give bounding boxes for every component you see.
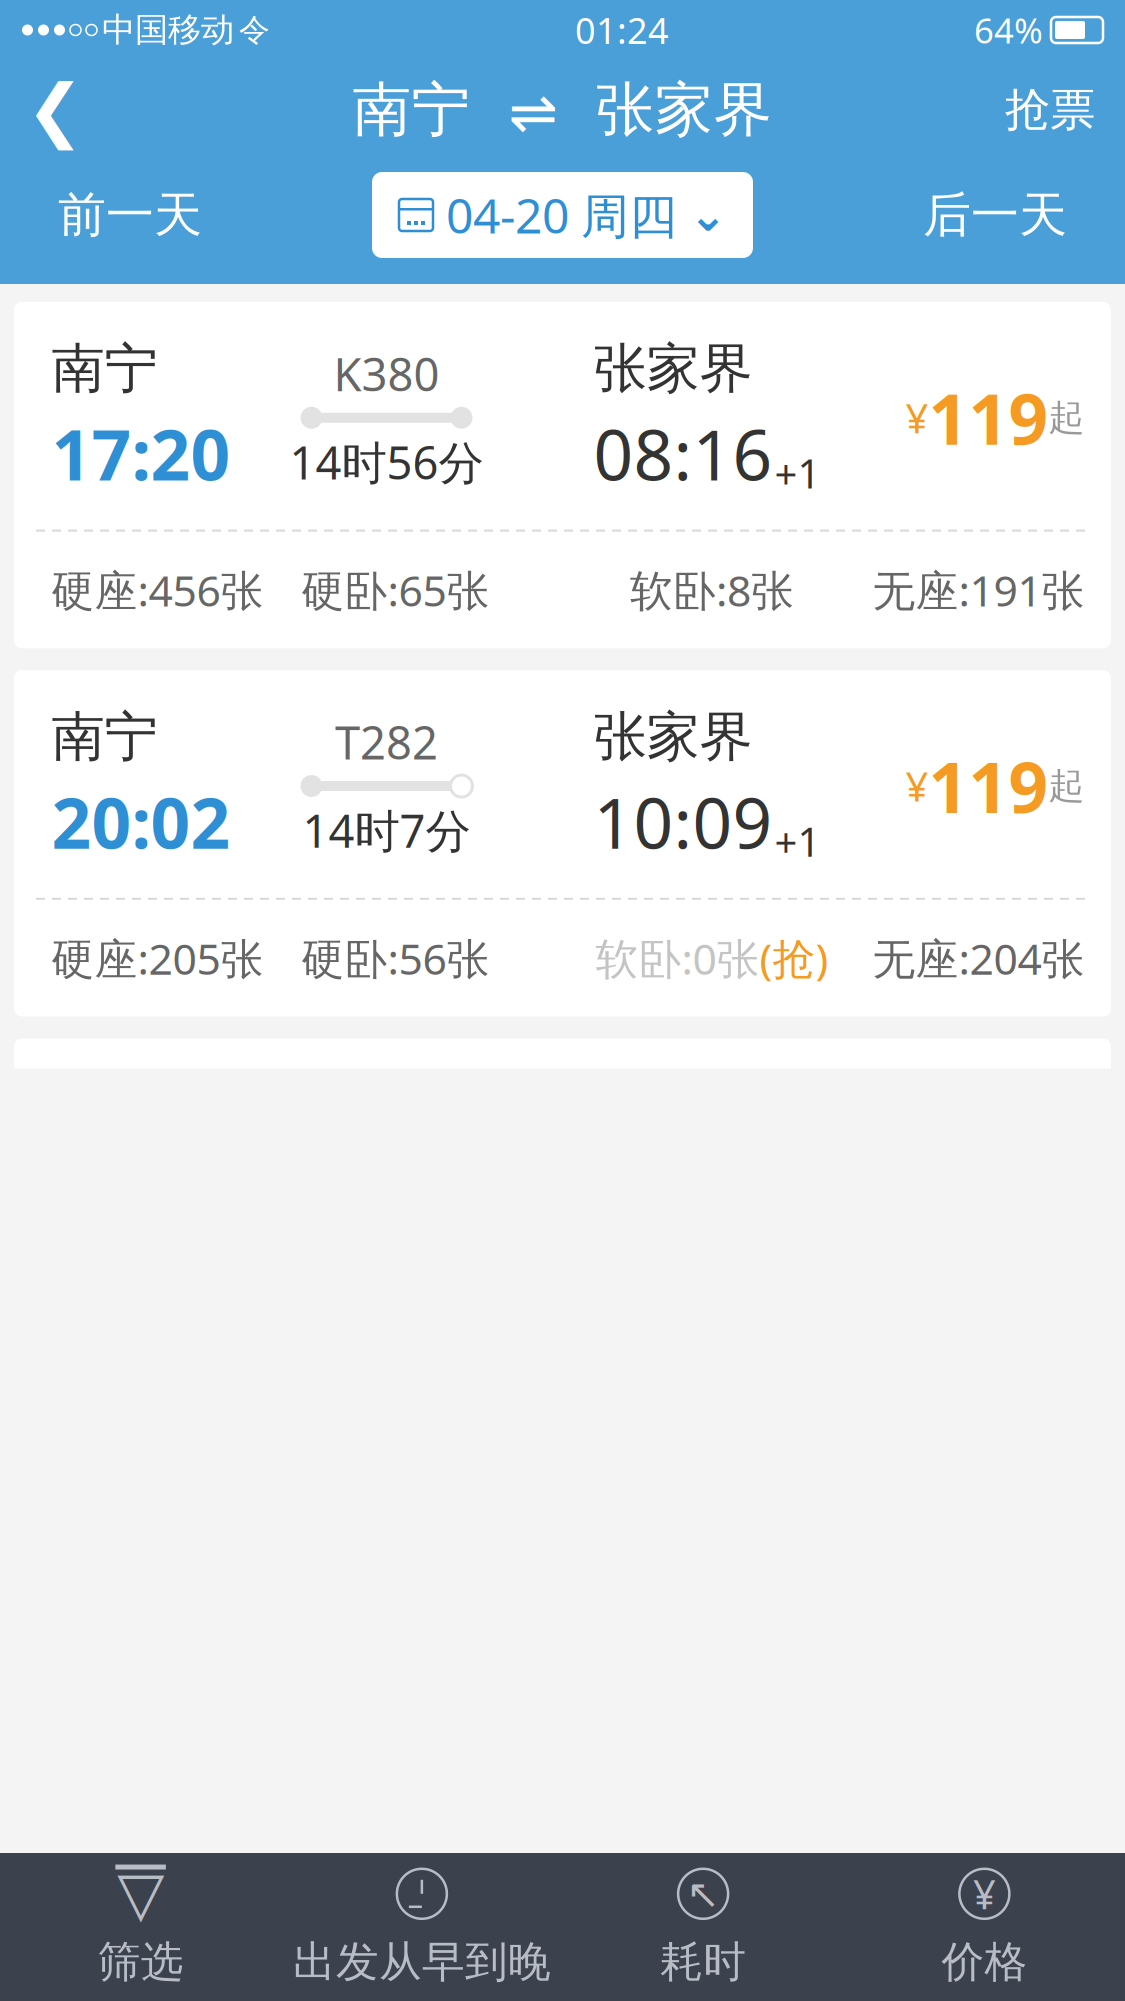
staticText: 软卧:8张 [630,562,794,618]
staticText: 软卧:0张 [595,930,759,986]
staticText: 张家界 [593,336,752,401]
staticText: +1 [774,815,820,868]
staticText: (抢) [759,930,828,986]
button[interactable]: 南宁 [14,670,1111,1016]
staticText: 前一天 [58,185,202,244]
staticText: ¥ [973,1867,996,1920]
staticText: +1 [774,446,820,500]
staticText: 耗时 [660,1936,746,1988]
staticText: 无座:204张 [872,930,1084,986]
button[interactable]: 中转 [14,1038,1111,1244]
staticText: 14时7分 [302,800,470,860]
button[interactable]: ¥ [844,1853,1125,2001]
button[interactable]: 南宁 [14,302,1111,648]
staticText: 119 [928,740,1048,832]
staticText: K380 [333,344,439,404]
button[interactable]: ▽ [0,1853,281,2001]
staticText: 价格 [941,1936,1027,1988]
button[interactable]: 返回 [0,60,110,160]
staticText: ¥ [905,759,928,813]
staticText: 硬座:205张 [51,930,263,986]
staticText: 64% [974,7,1043,53]
staticText: 张家界 [593,704,752,770]
staticText: 无座:191张 [872,562,1084,618]
staticText: 119 [928,372,1048,464]
staticText: 硬卧:65张 [301,562,489,618]
staticText: 后一天 [923,185,1067,244]
button[interactable]: 04-20 周四 [372,172,753,258]
staticText: 中国移动 [102,9,234,50]
staticText: 抢票 [1005,82,1095,138]
staticText: 筛选 [98,1936,184,1988]
staticText: 14时56分 [289,432,483,492]
staticText: 17:20 [51,407,230,500]
staticText: 01:24 [575,6,669,54]
button[interactable]: 前一天 [0,167,260,263]
staticText: 08:16 [593,407,772,500]
staticText: 20:02 [51,776,230,868]
staticText: 出发从早到晚 [293,1936,551,1988]
staticText: 南宁 [51,336,157,401]
button[interactable]: ↖ [562,1853,844,2001]
staticText: 10:09 [593,776,772,868]
staticText: 南宁 ⇌ 张家界 [352,74,772,146]
staticText: 起 [1048,396,1084,440]
button[interactable]: 出发从早到晚 [281,1853,562,2001]
staticText: 硬卧:56张 [301,930,489,986]
staticText: ¥ [905,391,928,444]
staticText: ▽ [117,1859,164,1929]
staticText: 令 [239,11,270,49]
staticText: ⌄ [689,189,727,241]
staticText: T282 [335,712,438,772]
staticText: ❮ [26,71,84,149]
staticText: ↖ [686,1871,720,1916]
staticText: 硬座:456张 [51,562,263,618]
staticText: 起 [1048,764,1084,808]
staticText: 04-20 周四 [446,183,677,247]
staticText: 南宁 [51,704,157,770]
button[interactable]: 抢票 [975,60,1125,160]
button[interactable]: 后一天 [865,167,1125,263]
